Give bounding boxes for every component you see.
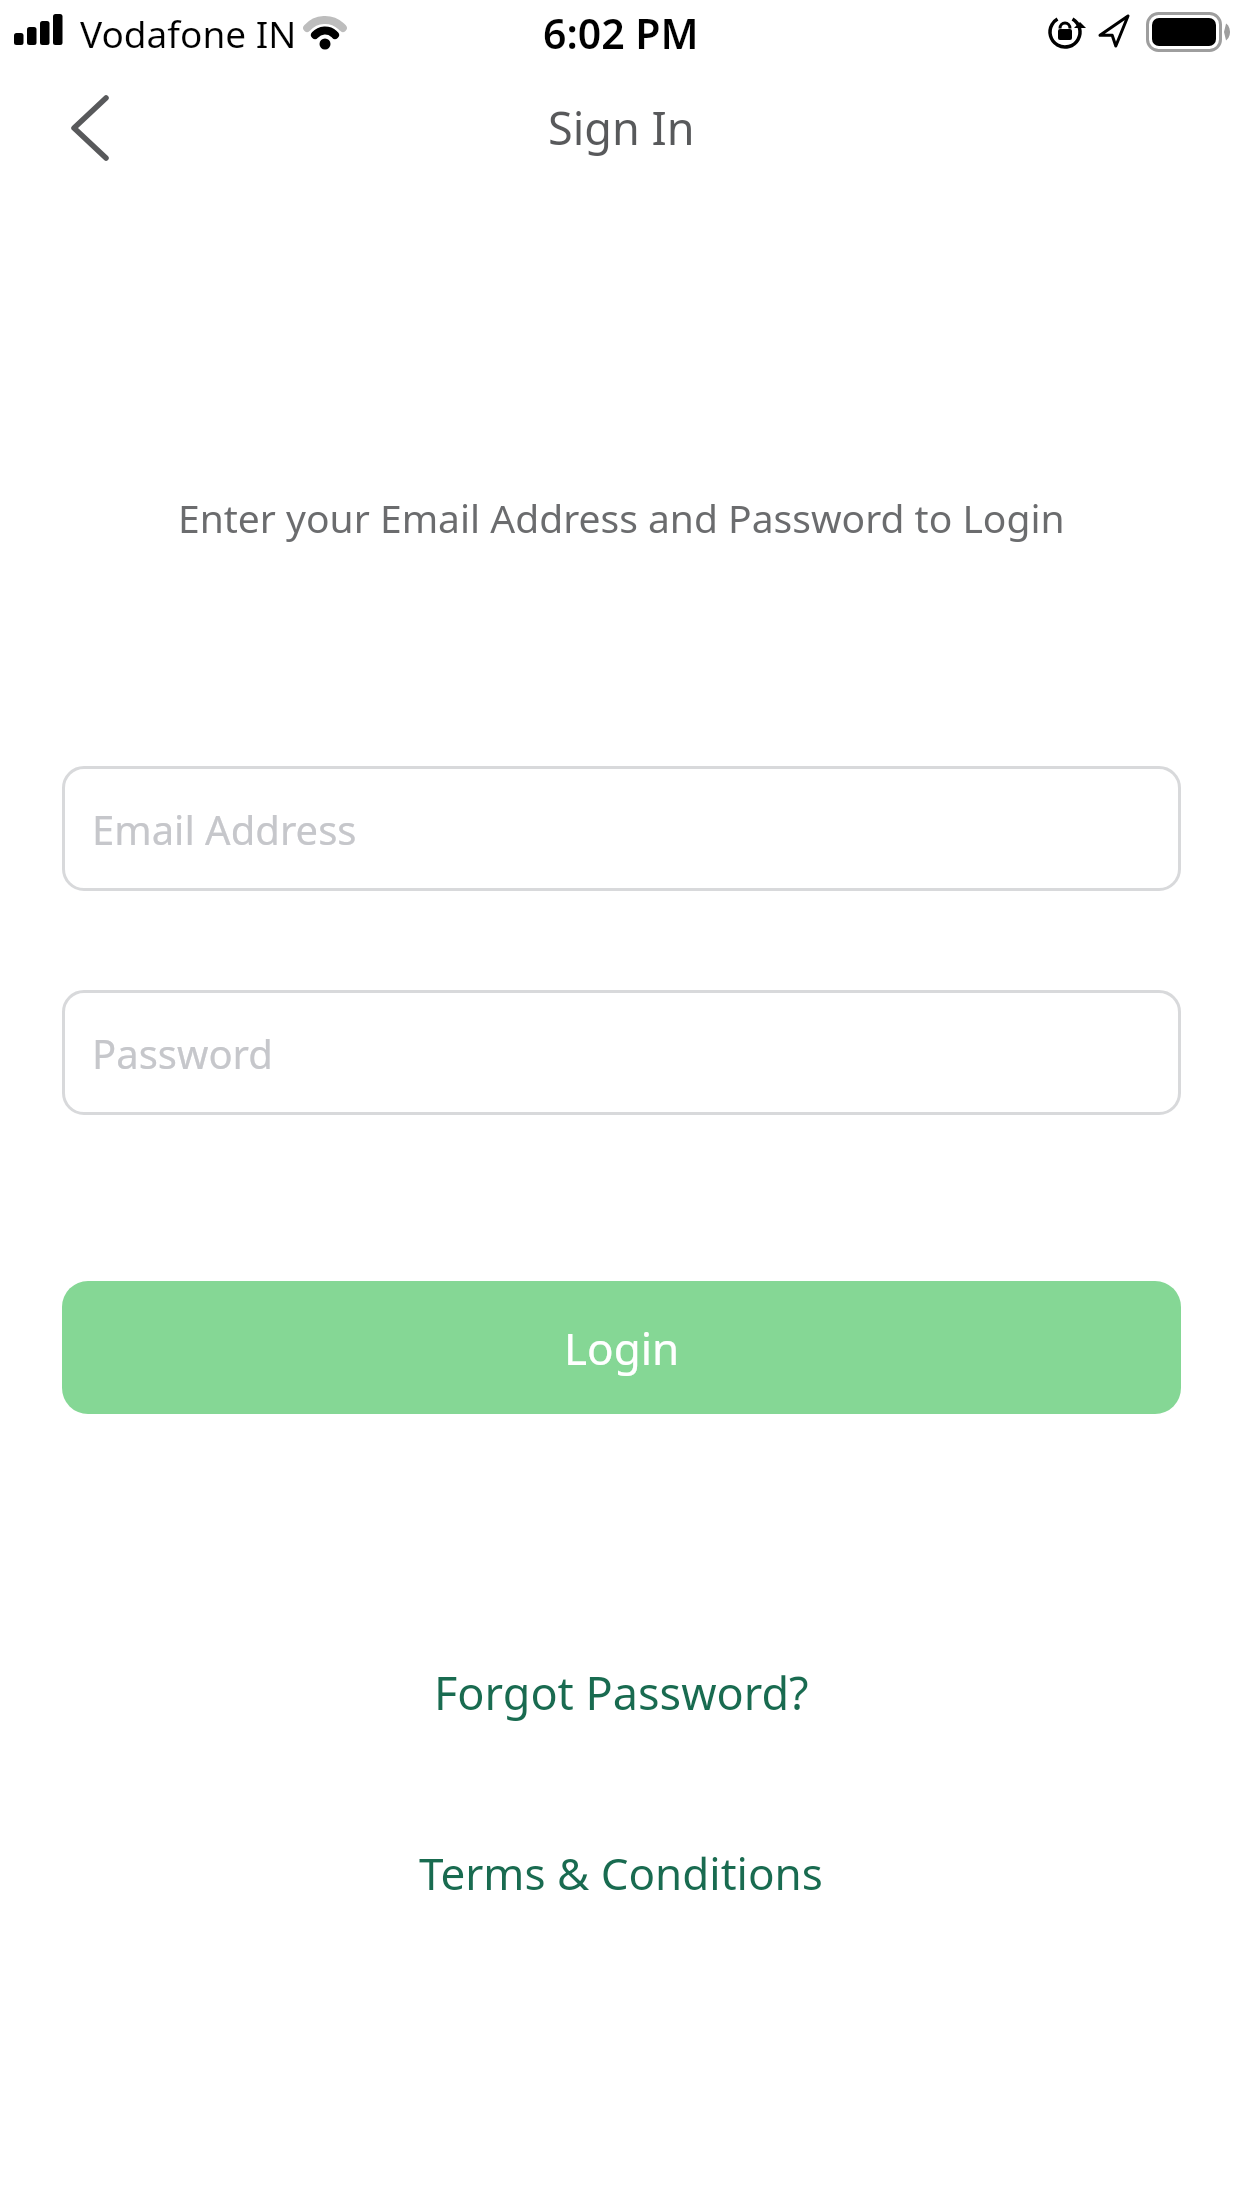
staticText: Sign In: [548, 97, 695, 158]
staticText: Enter your Email Address and Password to…: [178, 491, 1065, 544]
staticText: Forgot Password?: [434, 1662, 809, 1723]
staticText: Terms & Conditions: [419, 1843, 823, 1903]
button[interactable]: Login: [62, 1281, 1181, 1414]
button[interactable]: [50, 88, 130, 168]
staticText: Password: [92, 1026, 273, 1080]
staticText: Vodafone IN: [80, 8, 297, 58]
button[interactable]: Password: [62, 990, 1181, 1115]
staticText: Login: [564, 1318, 680, 1378]
staticText: 6:02 PM: [543, 5, 699, 61]
button[interactable]: Email Address: [62, 766, 1181, 891]
button[interactable]: Terms & Conditions: [419, 1843, 823, 1903]
button[interactable]: Forgot Password?: [434, 1662, 809, 1723]
staticText: Email Address: [92, 802, 357, 856]
